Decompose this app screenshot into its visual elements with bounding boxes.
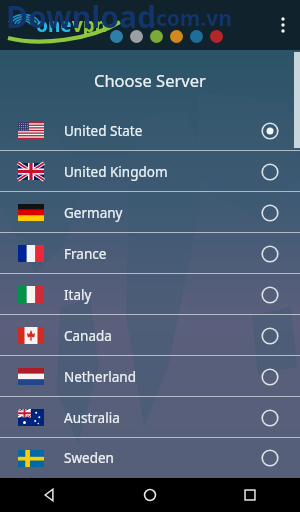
button[interactable]: France bbox=[0, 233, 300, 274]
button[interactable]: Back bbox=[0, 478, 100, 512]
button[interactable]: Australia bbox=[0, 397, 300, 438]
button[interactable]: Home bbox=[100, 478, 200, 512]
staticText: Australia bbox=[64, 409, 260, 427]
button[interactable]: Italy bbox=[0, 274, 300, 315]
button[interactable]: United State bbox=[0, 110, 300, 151]
staticText: Download bbox=[6, 0, 156, 37]
staticText: Sweden bbox=[64, 449, 260, 467]
button[interactable]: More options bbox=[268, 10, 298, 40]
staticText: Netherland bbox=[64, 368, 260, 386]
button[interactable]: Germany bbox=[0, 192, 300, 233]
button[interactable]: Netherland bbox=[0, 356, 300, 397]
staticText: Italy bbox=[64, 286, 260, 304]
staticText: United Kingdom bbox=[64, 163, 260, 181]
button[interactable]: Recent apps bbox=[200, 478, 300, 512]
button[interactable]: Sweden bbox=[0, 438, 300, 478]
staticText: vpn bbox=[72, 12, 108, 38]
staticText: Canada bbox=[64, 327, 260, 345]
staticText: United State bbox=[64, 122, 260, 140]
staticText: Choose Server bbox=[94, 69, 206, 91]
staticText: Germany bbox=[64, 204, 260, 222]
staticText: one bbox=[36, 12, 72, 38]
button[interactable]: Canada bbox=[0, 315, 300, 356]
staticText: France bbox=[64, 245, 260, 263]
staticText: .com.vn bbox=[150, 4, 232, 33]
button[interactable]: United Kingdom bbox=[0, 151, 300, 192]
